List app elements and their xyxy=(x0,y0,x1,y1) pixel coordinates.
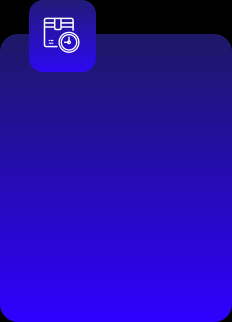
button[interactable]: Package tracker app icon xyxy=(29,0,96,72)
